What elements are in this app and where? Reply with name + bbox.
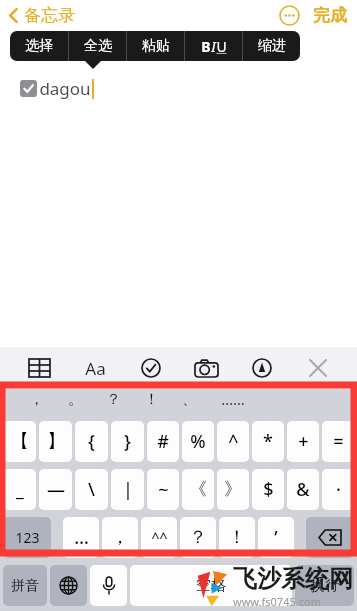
button[interactable]: 缩进	[243, 31, 300, 61]
button[interactable]: B	[185, 31, 242, 61]
staticText: U	[216, 37, 227, 56]
staticText: {	[88, 429, 95, 454]
button[interactable]: Checklist	[134, 351, 168, 385]
button[interactable]: 空格	[130, 565, 292, 606]
button[interactable]: 选择	[10, 31, 68, 61]
staticText: ^	[228, 429, 239, 454]
button[interactable]: 拼音	[3, 565, 47, 606]
button[interactable]: 】	[39, 421, 72, 462]
staticText: ，	[29, 390, 44, 409]
staticText: ’	[274, 525, 278, 550]
staticText: 、	[182, 390, 197, 409]
button[interactable]: 全选	[69, 31, 126, 61]
staticText: —	[47, 477, 65, 502]
staticText: …	[74, 525, 89, 550]
staticText: }	[124, 429, 131, 454]
staticText: |	[123, 477, 133, 502]
staticText: +	[298, 429, 309, 454]
button[interactable]: Switch keyboard	[50, 565, 87, 606]
staticText: 拼音	[11, 577, 39, 595]
button[interactable]: =	[322, 421, 354, 462]
button[interactable]: ^^	[141, 517, 177, 558]
staticText: 《	[189, 478, 207, 501]
button[interactable]: 》	[217, 469, 249, 510]
staticText: 123	[15, 528, 40, 547]
button[interactable]: $	[252, 469, 284, 510]
staticText: Aa	[85, 357, 106, 380]
staticText: ？	[189, 526, 207, 549]
button[interactable]: Markup	[245, 351, 279, 385]
button[interactable]: 【	[3, 421, 36, 462]
button[interactable]: #	[147, 421, 179, 462]
staticText: 空格	[196, 576, 226, 595]
button[interactable]: ~	[147, 469, 179, 510]
button[interactable]: |	[111, 469, 144, 510]
button[interactable]: {	[75, 421, 108, 462]
staticText: 换行	[311, 577, 339, 595]
staticText: I	[211, 37, 216, 56]
staticText: \	[88, 477, 95, 502]
button[interactable]: ！	[219, 517, 255, 558]
button[interactable]: *	[252, 421, 284, 462]
staticText: &	[296, 477, 310, 502]
staticText: 选择	[25, 37, 53, 55]
button[interactable]: Text format	[78, 351, 112, 385]
button[interactable]: More options	[279, 5, 300, 26]
button[interactable]: 完成	[311, 3, 349, 28]
staticText: 》	[224, 478, 242, 501]
button[interactable]: Close keyboard	[301, 351, 335, 385]
button[interactable]: ？	[106, 390, 121, 409]
button[interactable]: ，	[102, 517, 138, 558]
button[interactable]: ？	[180, 517, 216, 558]
staticText: ~	[158, 477, 169, 502]
staticText: ^^	[151, 528, 168, 547]
staticText: 备忘录	[24, 5, 75, 26]
staticText: %	[190, 429, 206, 454]
button[interactable]: %	[182, 421, 214, 462]
button[interactable]: _	[3, 469, 36, 510]
staticText: ·	[336, 477, 341, 502]
staticText: dagou	[39, 77, 91, 100]
button[interactable]: Table	[22, 351, 56, 385]
staticText: 完成	[313, 5, 347, 26]
staticText: ，	[111, 526, 129, 549]
button[interactable]: Dictation	[90, 565, 127, 606]
staticText: 。	[68, 390, 83, 409]
staticText: B	[201, 37, 211, 56]
button[interactable]: 备忘录	[6, 3, 77, 28]
staticText: $	[263, 477, 274, 502]
button[interactable]: 、	[182, 390, 197, 409]
staticText: 飞沙系统网	[233, 564, 353, 594]
button[interactable]: \	[75, 469, 108, 510]
button[interactable]: ！	[144, 390, 159, 409]
button[interactable]: 换行	[295, 565, 354, 606]
button[interactable]: 粘贴	[127, 31, 184, 61]
staticText: #	[157, 429, 169, 454]
button[interactable]: Delete	[306, 517, 354, 558]
staticText: *	[263, 429, 273, 454]
staticText: ……	[221, 389, 245, 409]
staticText: 全选	[84, 37, 112, 55]
button[interactable]: &	[287, 469, 319, 510]
button[interactable]: —	[39, 469, 72, 510]
button[interactable]: ，	[29, 390, 44, 409]
button[interactable]: ’	[258, 517, 294, 558]
button[interactable]: }	[111, 421, 144, 462]
button[interactable]: ^	[217, 421, 249, 462]
staticText: www.fs0745.com	[233, 594, 321, 609]
button[interactable]: 123	[3, 517, 51, 558]
staticText: 【	[11, 430, 29, 453]
button[interactable]: ……	[221, 389, 245, 409]
button[interactable]: ·	[322, 469, 354, 510]
button[interactable]: …	[63, 517, 99, 558]
button[interactable]: 《	[182, 469, 214, 510]
staticText: ！	[144, 390, 159, 409]
staticText: =	[333, 429, 344, 454]
staticText: ？	[106, 390, 121, 409]
staticText: 粘贴	[142, 37, 170, 55]
button[interactable]: 。	[68, 390, 83, 409]
button[interactable]: Checklist item checked	[20, 80, 37, 97]
staticText: ！	[228, 526, 246, 549]
button[interactable]: Camera	[189, 351, 223, 385]
button[interactable]: +	[287, 421, 319, 462]
